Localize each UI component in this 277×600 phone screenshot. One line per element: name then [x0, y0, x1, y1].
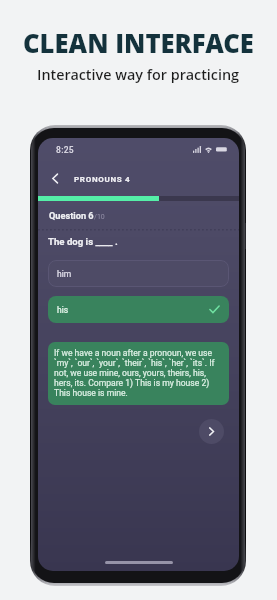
staticText: Interactive way for practicing: [37, 65, 240, 85]
staticText: /10: [94, 213, 105, 221]
staticText: PRONOUNS 4: [74, 175, 131, 184]
staticText: If we have a noun after a pronoun, we us…: [54, 348, 223, 398]
staticText: 8:25: [56, 145, 74, 155]
staticText: Question 6: [49, 210, 94, 221]
button[interactable]: Back: [45, 168, 65, 188]
button[interactable]: his: [48, 296, 229, 323]
staticText: his: [57, 305, 69, 315]
staticText: him: [57, 269, 72, 279]
staticText: CLEAN INTERFACE: [23, 26, 254, 61]
button[interactable]: Next question: [199, 419, 224, 444]
staticText: The dog is ____ .: [48, 236, 118, 247]
button[interactable]: him: [48, 260, 229, 287]
